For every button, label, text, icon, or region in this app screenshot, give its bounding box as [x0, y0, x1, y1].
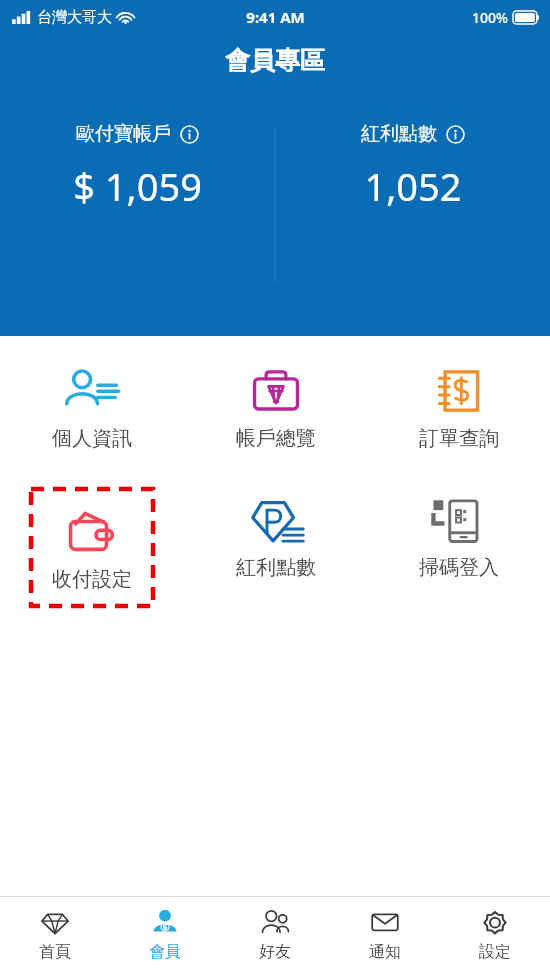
staticText: 台灣大哥大 [37, 8, 112, 27]
button[interactable]: 首頁 [0, 897, 110, 975]
button[interactable]: 掃碼登入 [367, 487, 550, 584]
staticText: 會員 [149, 942, 181, 962]
staticText: 收付設定 [52, 567, 132, 592]
staticText: 紅利點數 [236, 555, 316, 580]
button[interactable]: 訂單查詢 [367, 358, 550, 455]
other: 個人資訊 [63, 362, 121, 420]
button[interactable]: 會員 [110, 897, 220, 975]
staticText: 掃碼登入 [419, 555, 499, 580]
button[interactable]: 紅利點數 [275, 122, 550, 212]
staticText: 1,052 [364, 160, 462, 212]
staticText: 好友 [259, 942, 291, 962]
other: Info 紅利點數 [446, 125, 465, 144]
staticText: 個人資訊 [52, 426, 132, 451]
staticText: 訂單查詢 [419, 426, 499, 451]
staticText: 會員專區 [225, 45, 325, 76]
other: Info 歐付寶帳戶 [180, 125, 199, 144]
button[interactable]: 紅利點數 [184, 487, 367, 584]
button[interactable]: 設定 [440, 897, 550, 975]
button[interactable]: 歐付寶帳戶 [0, 122, 275, 212]
other: 掃碼登入 [430, 491, 488, 549]
button[interactable]: 帳戶總覽 [184, 358, 367, 455]
button[interactable]: 收付設定 [29, 487, 155, 608]
staticText: 通知 [369, 942, 401, 962]
staticText: 帳戶總覽 [236, 426, 316, 451]
staticText: 100% [472, 8, 508, 27]
staticText: $ 1,059 [73, 160, 202, 212]
other: 訂單查詢 [430, 362, 488, 420]
staticText: 設定 [479, 942, 511, 962]
other: 帳戶總覽 [247, 362, 305, 420]
button[interactable]: 個人資訊 [0, 358, 184, 455]
staticText: 歐付寶帳戶 [76, 122, 171, 146]
button[interactable]: 好友 [220, 897, 330, 975]
staticText: 紅利點數 [361, 122, 437, 146]
staticText: 首頁 [39, 942, 71, 962]
button[interactable]: 通知 [330, 897, 440, 975]
other: 紅利點數 [247, 491, 305, 549]
staticText: 9:41 AM [246, 7, 305, 27]
